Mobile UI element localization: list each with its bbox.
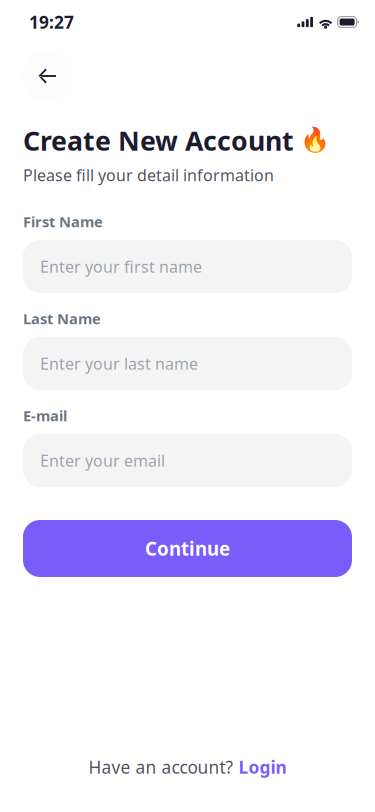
staticText: Enter your email: [40, 450, 165, 471]
staticText: First Name: [23, 212, 103, 231]
staticText: Create New Account: [23, 123, 294, 158]
staticText: Continue: [145, 536, 230, 561]
staticText: Enter your last name: [40, 353, 198, 374]
staticText: E-mail: [23, 406, 67, 425]
staticText: 19:27: [29, 10, 74, 33]
staticText: 🔥: [300, 126, 330, 153]
staticText: Have an account?: [88, 755, 233, 778]
staticText: Last Name: [23, 309, 101, 328]
staticText: Login: [238, 755, 286, 778]
button[interactable]: Back: [21, 50, 73, 102]
staticText: Please fill your detail information: [23, 164, 274, 186]
button[interactable]: Have an account?: [88, 754, 286, 780]
staticText: Enter your first name: [40, 256, 202, 277]
button[interactable]: Continue: [23, 520, 352, 577]
